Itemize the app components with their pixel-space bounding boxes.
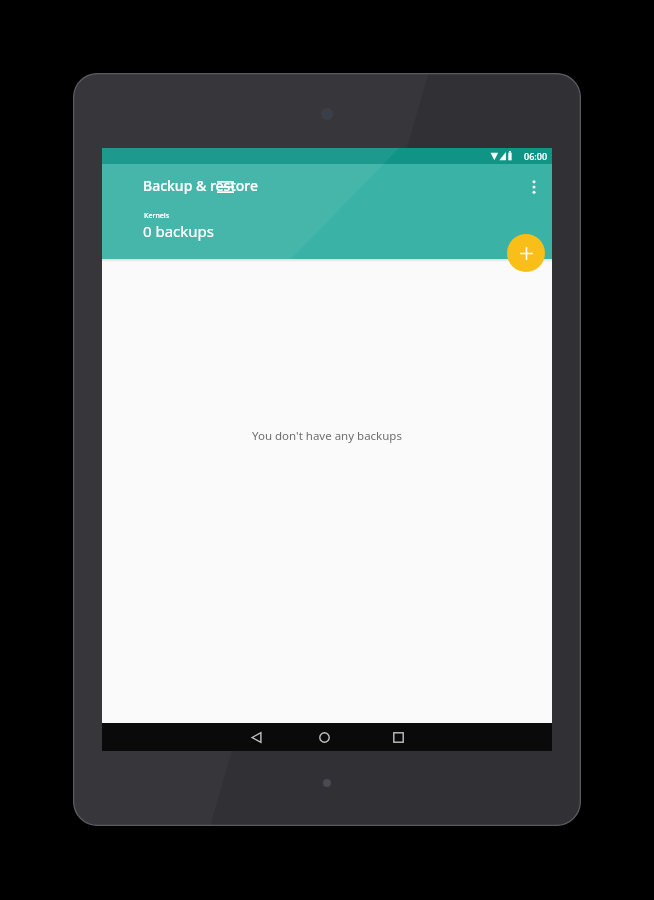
button[interactable]: Create backup xyxy=(507,234,545,272)
button[interactable]: More options xyxy=(515,168,553,206)
staticText: Kernels xyxy=(144,211,170,221)
staticText: 06:00 xyxy=(524,150,548,162)
button[interactable]: Home xyxy=(299,723,349,751)
staticText: Backup & restore xyxy=(143,176,258,195)
button[interactable]: Back xyxy=(231,723,281,751)
button[interactable]: Recent apps xyxy=(373,723,423,751)
staticText: You don't have any backups xyxy=(252,428,402,444)
staticText: 0 backups xyxy=(143,221,215,241)
button[interactable]: Open navigation drawer xyxy=(206,168,244,206)
